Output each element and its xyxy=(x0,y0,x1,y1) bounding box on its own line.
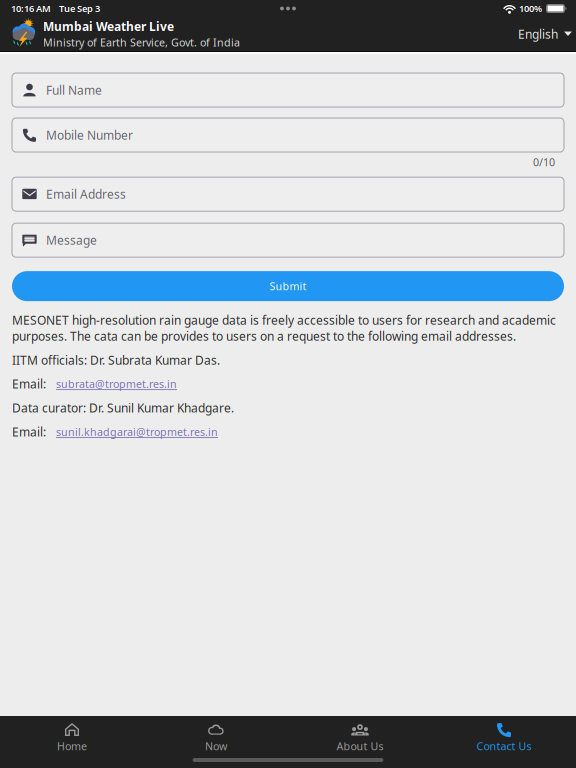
staticText: Full Name xyxy=(46,82,102,98)
staticText: Home xyxy=(57,739,87,753)
button[interactable]: Now xyxy=(144,716,288,768)
button[interactable]: Message xyxy=(12,223,564,257)
staticText: Tue Sep 3 xyxy=(59,2,100,15)
staticText: 100% xyxy=(519,2,542,15)
staticText: Data curator: Dr. Sunil Kumar Khadgare. xyxy=(12,400,234,416)
staticText: IITM officials: Dr. Subrata Kumar Das. xyxy=(12,352,220,368)
button[interactable]: Mobile Number xyxy=(12,118,564,152)
staticText: Submit xyxy=(269,279,306,293)
staticText: Now xyxy=(205,739,227,753)
staticText: sunil.khadgarai@tropmet.res.in xyxy=(56,425,218,439)
button[interactable]: Submit xyxy=(12,271,564,301)
staticText: Ministry of Earth Service, Govt. of Indi… xyxy=(43,35,240,50)
staticText: subrata@tropmet.res.in xyxy=(56,377,177,391)
staticText: Message xyxy=(46,232,97,248)
button[interactable]: Full Name xyxy=(12,73,564,107)
staticText: English xyxy=(518,26,558,42)
staticText: MESONET high-resolution rain gauge data … xyxy=(12,312,556,344)
button[interactable]: Email Address xyxy=(12,177,564,211)
button[interactable]: Contact Us xyxy=(432,716,576,768)
button[interactable]: About Us xyxy=(288,716,432,768)
staticText: Email: xyxy=(12,424,46,440)
button[interactable]: subrata@tropmet.res.in xyxy=(46,377,177,391)
staticText: Email: xyxy=(12,376,46,392)
staticText: About Us xyxy=(336,739,383,753)
button[interactable]: English xyxy=(504,17,576,51)
button[interactable]: Home xyxy=(0,716,144,768)
staticText: 10:16 AM xyxy=(11,2,51,15)
staticText: Contact Us xyxy=(476,739,531,753)
button[interactable]: sunil.khadgarai@tropmet.res.in xyxy=(46,425,218,439)
staticText: 0/10 xyxy=(533,155,555,169)
staticText: Mumbai Weather Live xyxy=(43,18,174,34)
staticText: Mobile Number xyxy=(46,127,133,143)
staticText: Email Address xyxy=(46,186,126,202)
